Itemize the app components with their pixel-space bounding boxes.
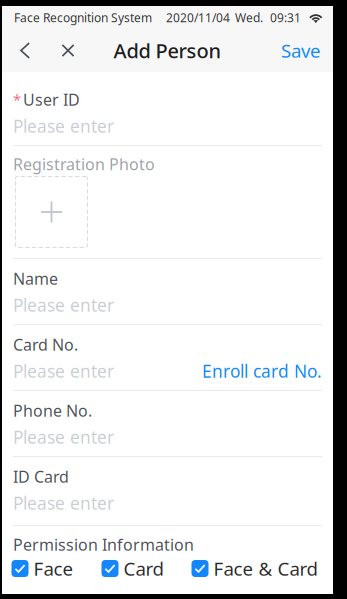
staticText: Please enter	[13, 359, 114, 382]
staticText: Registration Photo	[13, 153, 155, 175]
staticText: Please enter	[13, 114, 114, 137]
button[interactable]: Save	[281, 29, 321, 72]
staticText: Phone No.	[13, 400, 92, 421]
staticText: User ID	[23, 89, 80, 110]
staticText: 09:31	[270, 9, 301, 25]
staticText: Face Recognition System	[14, 9, 152, 25]
button[interactable]: Back	[14, 29, 36, 72]
staticText: 2020/11/04	[166, 9, 230, 25]
staticText: Add Person	[113, 37, 221, 64]
staticText: Please enter	[13, 491, 114, 514]
button[interactable]: Add registration photo	[15, 176, 88, 248]
staticText: Card	[123, 556, 163, 581]
staticText: Please enter	[13, 293, 114, 316]
staticText: Enroll card No.	[202, 359, 322, 382]
button[interactable]: Close	[57, 29, 79, 72]
staticText: Please enter	[13, 425, 114, 448]
staticText: Permission Information	[13, 534, 194, 555]
button[interactable]: Card	[101, 556, 163, 581]
staticText: Face & Card	[213, 556, 317, 581]
staticText: Wed.	[235, 9, 263, 25]
staticText: *	[13, 90, 21, 109]
staticText: Face	[33, 556, 73, 581]
staticText: Card No.	[13, 334, 78, 355]
staticText: ID Card	[13, 466, 69, 487]
button[interactable]: Face	[11, 556, 73, 581]
staticText: Save	[281, 38, 321, 63]
button[interactable]: Enroll card No.	[202, 359, 322, 382]
staticText: Name	[13, 268, 58, 289]
button[interactable]: Face & Card	[191, 556, 317, 581]
